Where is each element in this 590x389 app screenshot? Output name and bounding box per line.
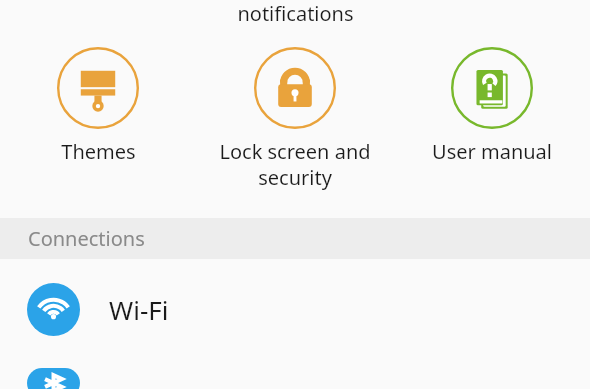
staticText: Themes	[61, 138, 136, 165]
other: Lock screen and security	[253, 46, 337, 130]
button[interactable]: Lock screen and security	[196, 44, 393, 191]
button[interactable]: Themes	[0, 44, 196, 165]
button[interactable]: Bluetooth	[0, 359, 590, 389]
staticText: User manual	[432, 138, 552, 165]
staticText: Lock screen and security	[219, 138, 371, 191]
other: Bluetooth	[27, 368, 80, 389]
staticText: Connections	[28, 225, 145, 252]
staticText: Wi-Fi	[109, 292, 169, 327]
other: User manual	[450, 46, 534, 130]
other: Themes	[56, 46, 140, 130]
button[interactable]: User manual	[393, 44, 590, 165]
staticText: notifications	[237, 0, 354, 27]
button[interactable]: Wi-Fi	[0, 259, 590, 359]
